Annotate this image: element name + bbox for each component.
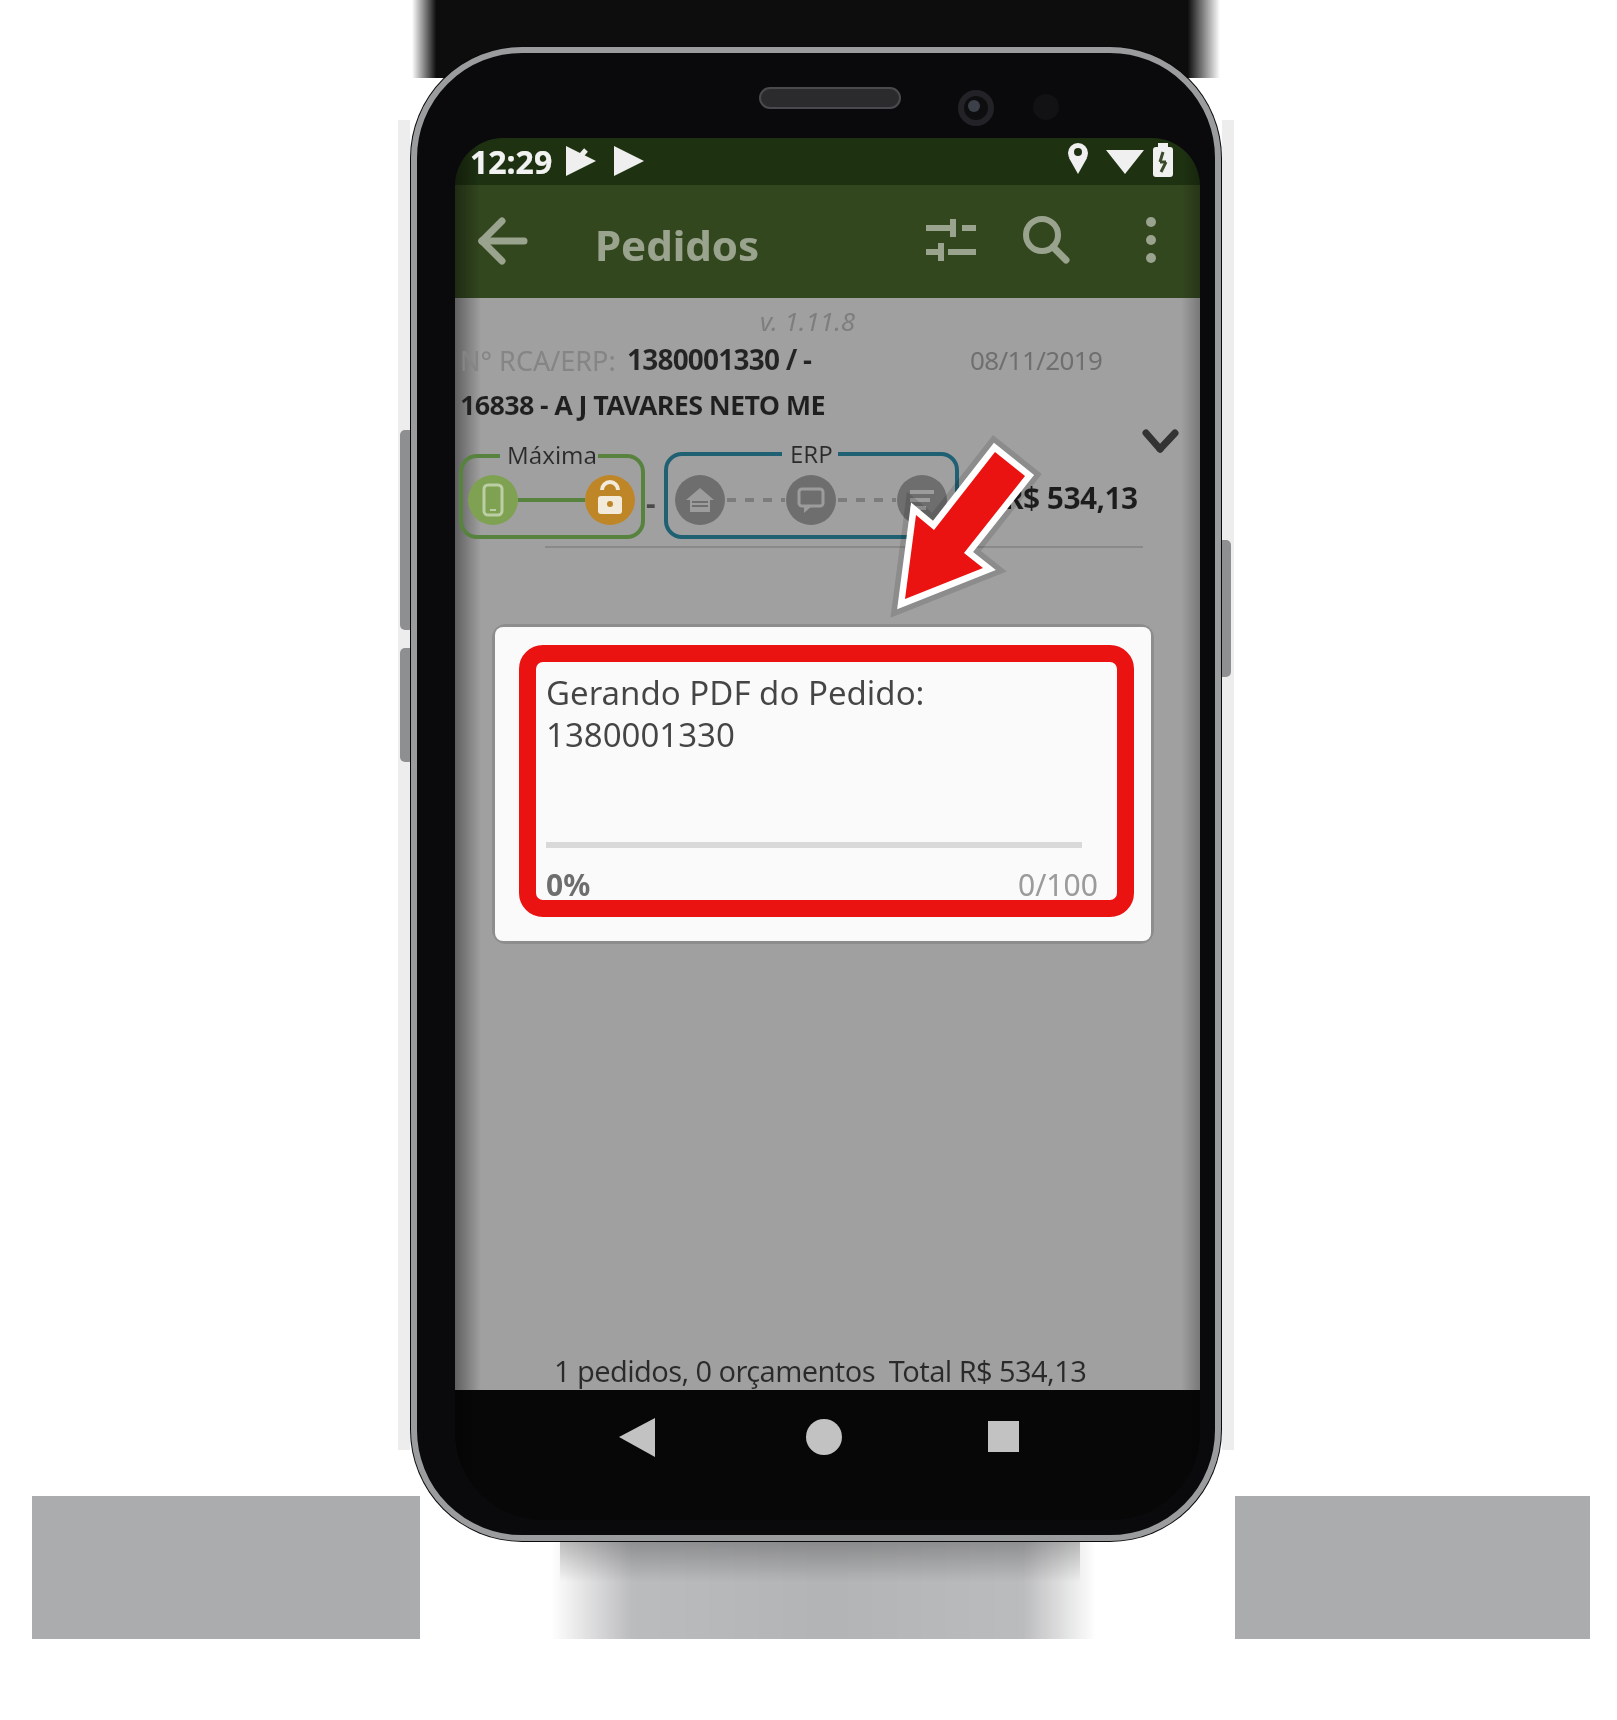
staticText: 12:29: [470, 140, 553, 184]
staticText: N° RCA/ERP:: [460, 342, 623, 379]
button[interactable]: [456, 300, 1200, 546]
staticText: 1380001330: [546, 712, 735, 757]
staticText: 16838 - A J TAVARES NETO ME: [460, 386, 825, 423]
button[interactable]: [786, 1405, 862, 1471]
button[interactable]: [910, 210, 990, 270]
button[interactable]: [468, 212, 528, 268]
button[interactable]: [1128, 210, 1176, 270]
staticText: 0/100: [1018, 864, 1098, 905]
staticText: -: [646, 482, 656, 523]
staticText: ERP: [790, 437, 833, 470]
staticText: 1 pedidos, 0 orçamentos Total R$ 534,13: [554, 1351, 1087, 1390]
button[interactable]: [1016, 210, 1080, 270]
staticText: 0%: [546, 864, 591, 905]
staticText: Pedidos: [595, 216, 760, 273]
button[interactable]: [966, 1405, 1042, 1471]
staticText: Máxima: [507, 438, 598, 471]
button[interactable]: [495, 627, 1151, 941]
staticText: R$ 534,13: [1004, 477, 1138, 518]
staticText: v. 1.11.8: [760, 303, 856, 338]
staticText: Gerando PDF do Pedido:: [546, 670, 925, 715]
staticText: 1380001330 / -: [627, 340, 812, 378]
staticText: 08/11/2019: [970, 342, 1103, 377]
button[interactable]: [600, 1405, 676, 1471]
